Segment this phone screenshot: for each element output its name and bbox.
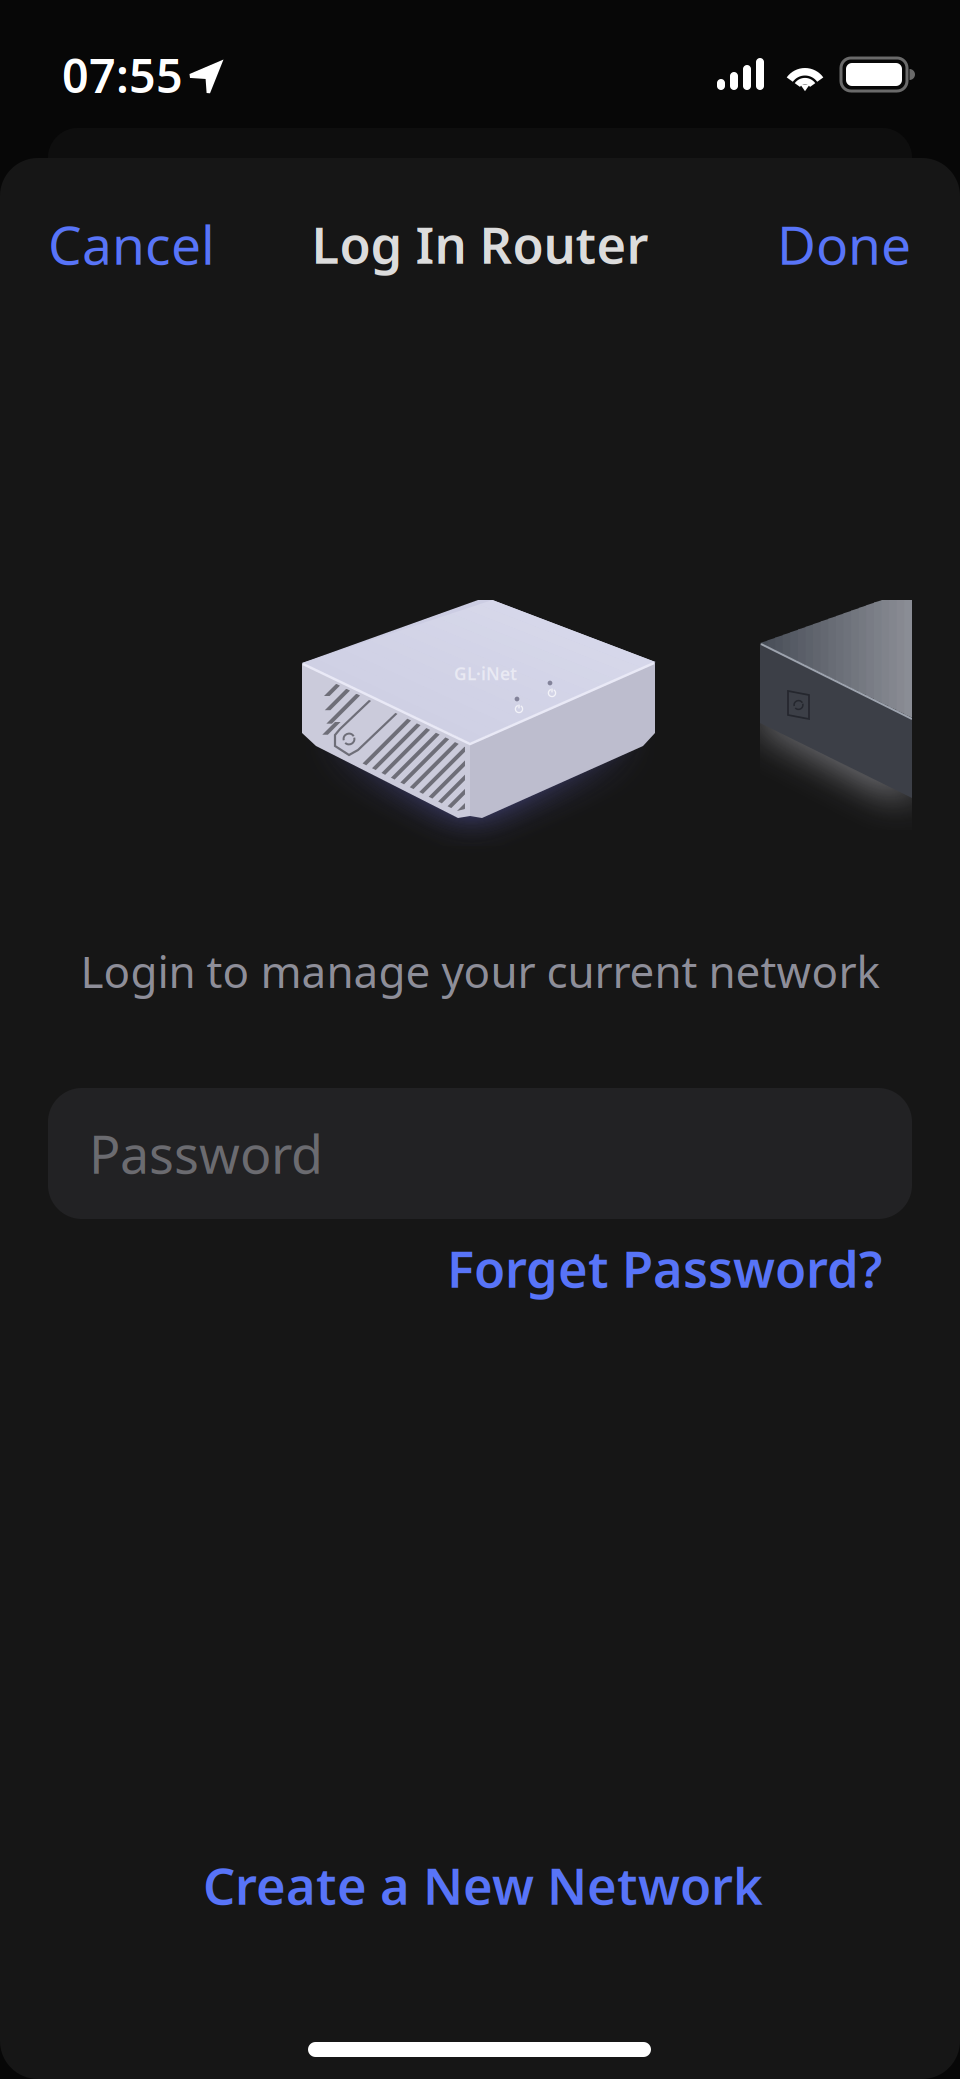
staticText: Forget Password? xyxy=(447,1234,882,1302)
button[interactable]: Forget Password? xyxy=(432,1233,882,1303)
staticText: Password xyxy=(89,1119,323,1188)
staticText: Log In Router xyxy=(311,210,648,278)
staticText: Done xyxy=(777,209,911,279)
staticText: Login to manage your current network xyxy=(80,942,879,1000)
button[interactable]: Done xyxy=(736,202,911,286)
staticText: GL·iNet xyxy=(454,662,517,685)
staticText: Create a New Network xyxy=(203,1851,763,1919)
button[interactable]: Create a New Network xyxy=(3,1845,960,1925)
staticText: 07:55 xyxy=(62,44,183,106)
staticText: Cancel xyxy=(48,209,215,279)
button[interactable]: Cancel xyxy=(48,202,223,286)
